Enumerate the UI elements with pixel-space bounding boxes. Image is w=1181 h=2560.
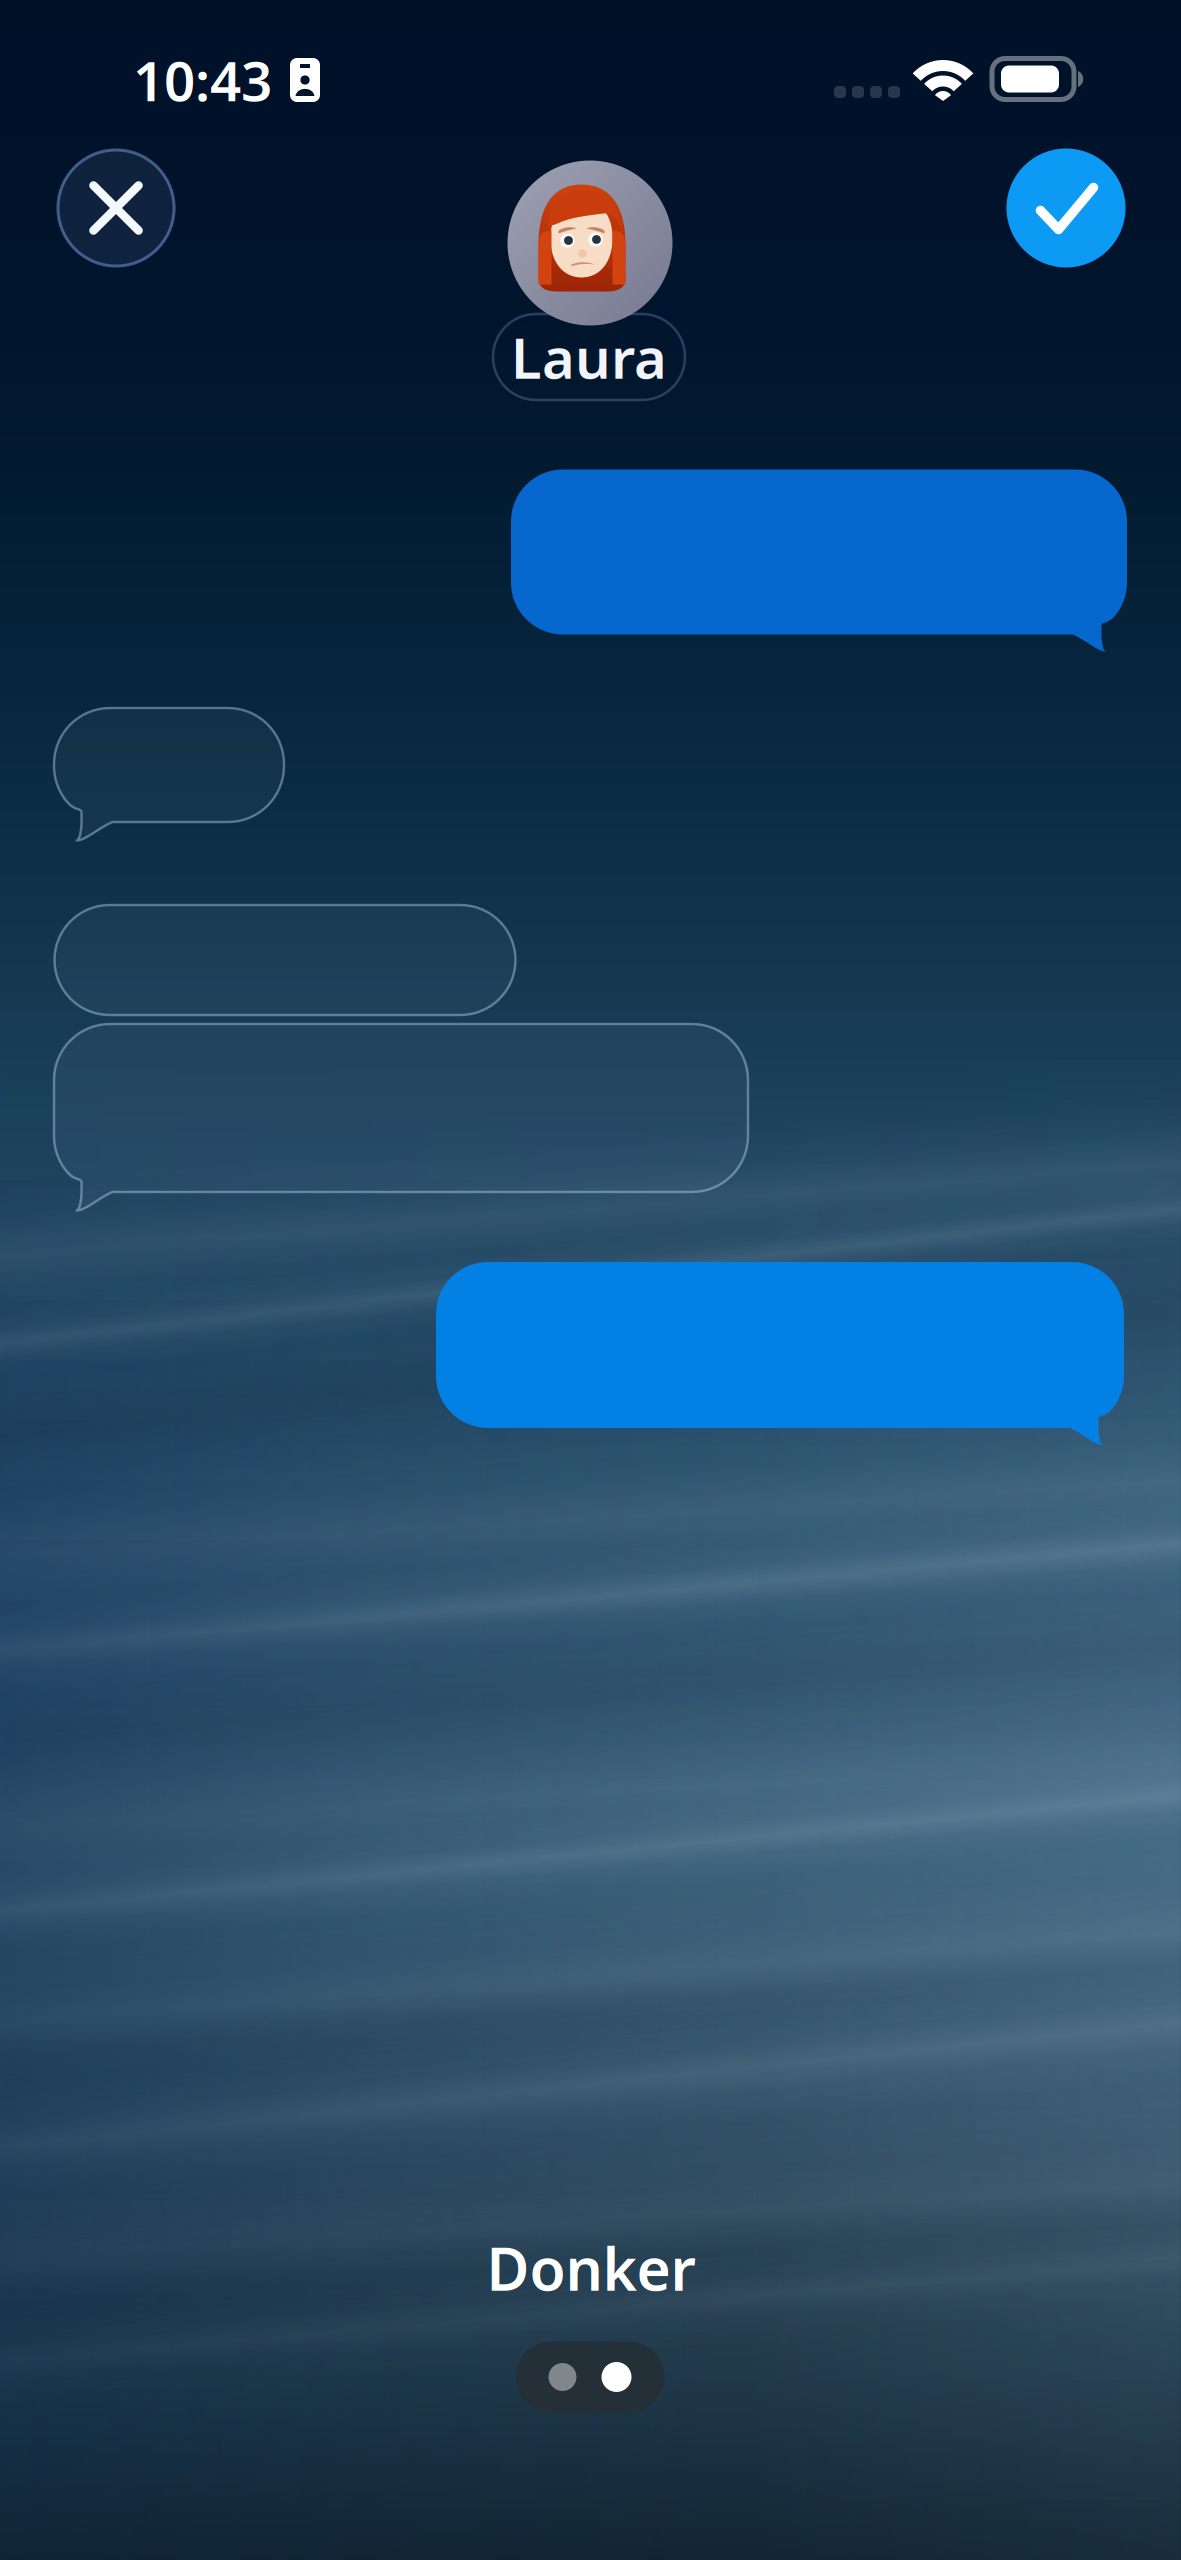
- button[interactable]: Page 2 of 2: [515, 2341, 664, 2412]
- staticText: Donker: [486, 2229, 695, 2307]
- staticText: Laura: [511, 320, 667, 394]
- button[interactable]: Confirm: [1006, 148, 1125, 267]
- button[interactable]: Laura: [493, 314, 685, 400]
- staticText: 10:43: [133, 44, 272, 116]
- button[interactable]: Close: [56, 148, 175, 267]
